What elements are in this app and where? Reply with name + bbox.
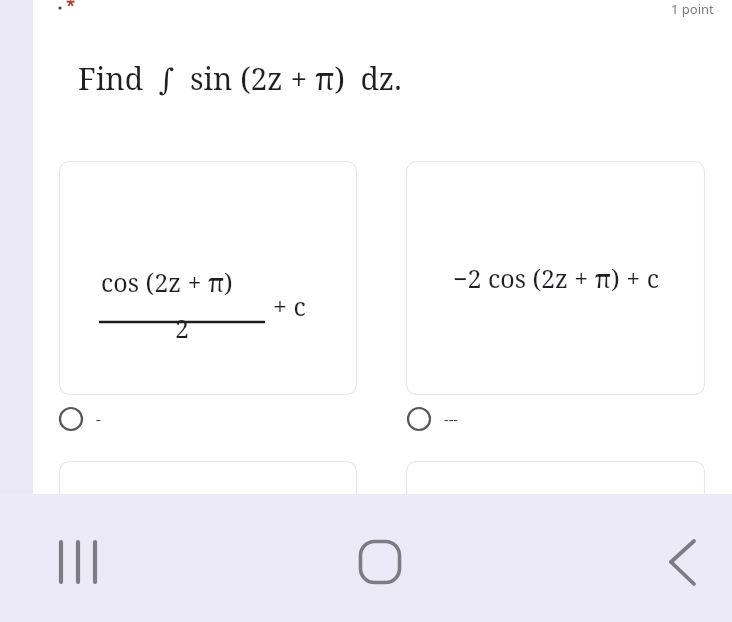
button[interactable]: Home bbox=[344, 524, 416, 600]
staticText: --- bbox=[444, 409, 458, 429]
button[interactable] bbox=[406, 461, 705, 581]
staticText: * bbox=[66, 0, 76, 17]
staticText: + c bbox=[273, 289, 306, 323]
staticText: 2 bbox=[99, 311, 265, 345]
staticText: −2 cos (2z + π) + c bbox=[453, 261, 659, 295]
staticText: Find ∫ sin (2z + π) dz. bbox=[78, 58, 402, 99]
button[interactable]: Recent apps bbox=[42, 524, 114, 600]
button[interactable]: −2 cos (2z + π) + c bbox=[406, 161, 705, 395]
staticText: cos (2z + π) bbox=[101, 265, 233, 299]
staticText: 1 point bbox=[671, 0, 714, 18]
button[interactable]: cos (2z + π) bbox=[59, 161, 357, 395]
button[interactable]: --- bbox=[402, 402, 562, 436]
button[interactable]: - bbox=[54, 402, 214, 436]
button[interactable]: Back bbox=[646, 524, 718, 600]
button[interactable] bbox=[59, 461, 357, 581]
staticText: - bbox=[96, 409, 101, 429]
